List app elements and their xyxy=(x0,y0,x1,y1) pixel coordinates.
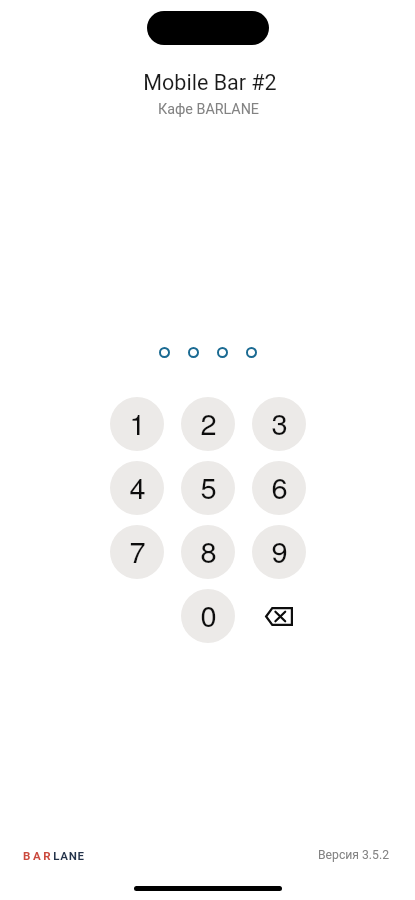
button[interactable]: 7 xyxy=(110,525,164,579)
staticText: 3 xyxy=(271,402,288,444)
staticText: 1 xyxy=(129,402,146,444)
button[interactable]: 6 xyxy=(252,461,306,515)
staticText: 9 xyxy=(271,530,288,572)
staticText: 8 xyxy=(200,530,217,572)
staticText: BARLANE xyxy=(23,849,85,862)
button[interactable]: 1 xyxy=(110,397,164,451)
staticText: 7 xyxy=(129,530,146,572)
staticText: 6 xyxy=(271,466,288,508)
button[interactable]: 5 xyxy=(181,461,235,515)
button[interactable]: 2 xyxy=(181,397,235,451)
staticText: Кафе BARLANE xyxy=(158,101,259,118)
staticText: Версия 3.5.2 xyxy=(318,848,390,862)
staticText: 4 xyxy=(129,466,146,508)
staticText: 5 xyxy=(200,466,217,508)
staticText: 0 xyxy=(200,594,217,636)
button[interactable]: 8 xyxy=(181,525,235,579)
button[interactable]: 4 xyxy=(110,461,164,515)
button[interactable]: Backspace xyxy=(252,589,306,643)
button[interactable]: 9 xyxy=(252,525,306,579)
staticText: Mobile Bar #2 xyxy=(143,70,277,95)
button[interactable]: 0 xyxy=(181,589,235,643)
button[interactable]: 3 xyxy=(252,397,306,451)
staticText: 2 xyxy=(200,402,217,444)
